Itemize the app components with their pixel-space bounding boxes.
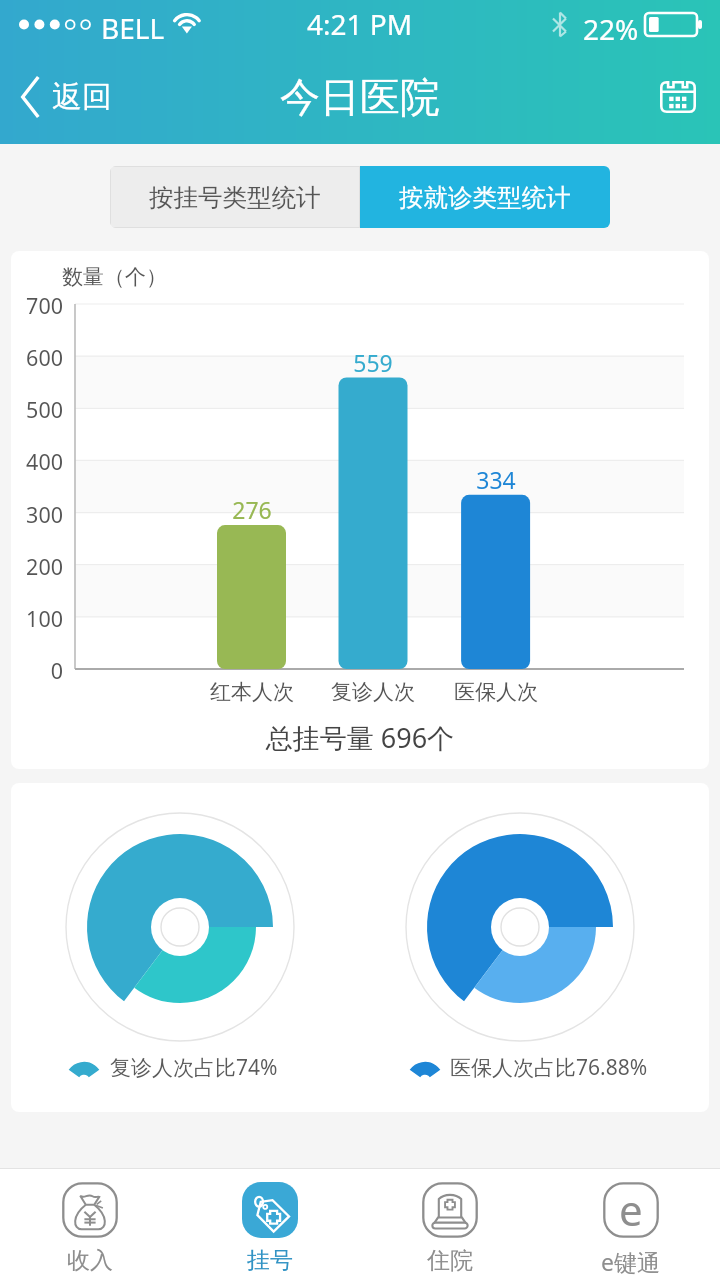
staticText: 0 <box>11 656 63 685</box>
staticText: 复诊人次 <box>313 679 433 705</box>
button[interactable]: e <box>540 1169 720 1277</box>
staticText: 559 <box>313 347 433 378</box>
staticText: 276 <box>192 494 312 525</box>
staticText: 600 <box>11 343 63 372</box>
button[interactable]: 挂号 <box>180 1169 360 1275</box>
staticText: BELL <box>101 9 165 47</box>
staticText: e <box>619 1181 643 1237</box>
staticText: 医保人次占比76.88% <box>450 1053 648 1082</box>
button[interactable]: 按就诊类型统计 <box>360 166 610 228</box>
staticText: 334 <box>436 464 556 495</box>
staticText: 总挂号量 696个 <box>11 719 709 756</box>
staticText: 复诊人次占比74% <box>110 1053 278 1082</box>
staticText: e键通 <box>601 1246 660 1277</box>
staticText: 医保人次 <box>436 679 556 705</box>
staticText: 返回 <box>52 78 112 116</box>
button[interactable]: 按挂号类型统计 <box>110 166 360 228</box>
staticText: 收入 <box>67 1246 113 1275</box>
staticText: 住院 <box>427 1246 473 1275</box>
staticText: 22% <box>583 10 639 48</box>
staticText: 100 <box>11 604 63 633</box>
button[interactable]: 收入 <box>0 1169 180 1275</box>
staticText: 400 <box>11 447 63 476</box>
button[interactable]: Calendar <box>650 69 706 125</box>
staticText: 今日医院 <box>280 72 440 122</box>
staticText: 红本人次 <box>192 679 312 705</box>
staticText: 500 <box>11 395 63 424</box>
staticText: 700 <box>11 291 63 320</box>
staticText: 300 <box>11 500 63 529</box>
staticText: 4:21 PM <box>307 5 413 43</box>
staticText: 挂号 <box>247 1246 293 1275</box>
button[interactable]: 返回 <box>0 75 122 119</box>
staticText: 数量（个） <box>62 264 167 290</box>
staticText: 按挂号类型统计 <box>149 182 321 213</box>
button[interactable]: 住院 <box>360 1169 540 1275</box>
staticText: 200 <box>11 552 63 581</box>
staticText: 按就诊类型统计 <box>399 182 571 213</box>
